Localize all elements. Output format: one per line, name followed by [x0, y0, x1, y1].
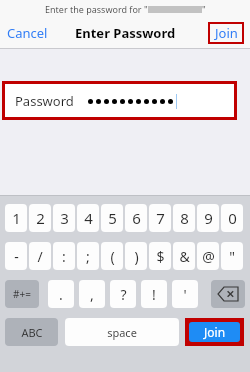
- button[interactable]: &: [173, 242, 195, 270]
- button[interactable]: 7: [149, 204, 171, 232]
- button[interactable]: /: [29, 242, 51, 270]
- staticText: ;: [86, 247, 90, 266]
- staticText: 0: [228, 208, 237, 228]
- staticText: 4: [84, 208, 93, 228]
- staticText: Join: [204, 324, 226, 340]
- button[interactable]: ABC: [5, 318, 58, 346]
- staticText: 7: [156, 208, 165, 228]
- staticText: (: [110, 247, 115, 266]
- button[interactable]: !: [141, 280, 167, 308]
- staticText: ): [134, 247, 139, 266]
- button[interactable]: 1: [5, 204, 27, 232]
- staticText: :: [62, 247, 66, 266]
- button[interactable]: (: [101, 242, 123, 270]
- button[interactable]: Password: [5, 84, 234, 117]
- button[interactable]: #+=: [5, 280, 39, 308]
- button[interactable]: 4: [77, 204, 99, 232]
- button[interactable]: Backspace: [211, 280, 245, 308]
- staticText: 9: [204, 208, 213, 228]
- staticText: #+=: [13, 287, 31, 301]
- staticText: /: [37, 247, 43, 266]
- staticText: @: [202, 247, 215, 266]
- staticText: 1: [12, 208, 21, 228]
- button[interactable]: ': [172, 280, 198, 308]
- staticText: Enter the password for ": [45, 3, 148, 15]
- button[interactable]: space: [65, 318, 179, 346]
- staticText: Cancel: [7, 24, 48, 42]
- button[interactable]: 0: [221, 204, 243, 232]
- staticText: ABC: [21, 325, 43, 340]
- staticText: 3: [60, 208, 69, 228]
- button[interactable]: 8: [173, 204, 195, 232]
- button[interactable]: .: [48, 280, 74, 308]
- button[interactable]: ): [125, 242, 147, 270]
- staticText: space: [107, 325, 137, 340]
- button[interactable]: $: [149, 242, 171, 270]
- button[interactable]: ": [221, 242, 243, 270]
- button[interactable]: 6: [125, 204, 147, 232]
- staticText: 5: [108, 208, 117, 228]
- button[interactable]: -: [5, 242, 27, 270]
- button[interactable]: 3: [53, 204, 75, 232]
- button[interactable]: Join: [189, 322, 240, 342]
- staticText: Password: [15, 92, 74, 110]
- staticText: 6: [132, 208, 141, 228]
- button[interactable]: @: [197, 242, 219, 270]
- staticText: .: [59, 285, 63, 304]
- button[interactable]: ;: [77, 242, 99, 270]
- button[interactable]: Join: [210, 24, 242, 42]
- staticText: Enter Password: [75, 24, 176, 42]
- staticText: 8: [180, 208, 189, 228]
- button[interactable]: 5: [101, 204, 123, 232]
- button[interactable]: 9: [197, 204, 219, 232]
- staticText: ": [202, 3, 206, 15]
- button[interactable]: ?: [110, 280, 136, 308]
- staticText: 2: [36, 208, 45, 228]
- button[interactable]: 2: [29, 204, 51, 232]
- button[interactable]: Cancel: [4, 19, 51, 47]
- staticText: $: [156, 247, 165, 266]
- staticText: Join: [215, 24, 238, 42]
- staticText: ': [183, 285, 187, 304]
- button[interactable]: ,: [79, 280, 105, 308]
- staticText: ?: [120, 285, 127, 304]
- staticText: -: [14, 247, 19, 266]
- staticText: ": [229, 247, 235, 266]
- staticText: ,: [90, 285, 94, 304]
- staticText: &: [179, 247, 190, 266]
- staticText: !: [152, 285, 156, 304]
- button[interactable]: :: [53, 242, 75, 270]
